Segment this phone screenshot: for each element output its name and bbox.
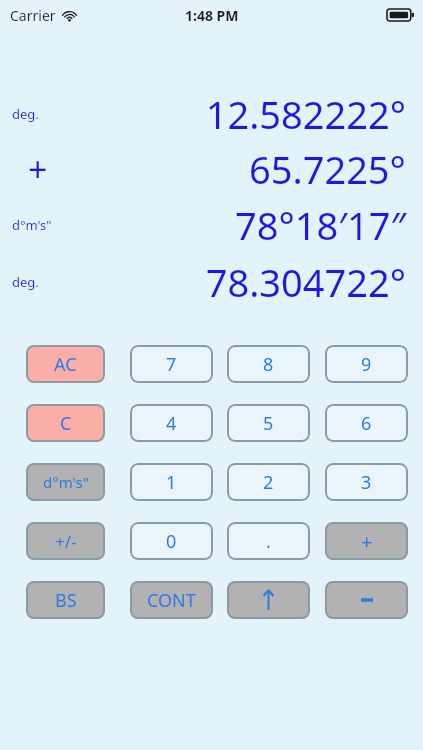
staticText: d°m's": [12, 216, 52, 234]
button[interactable]: CONT: [130, 581, 213, 619]
staticText: 78.304722°: [205, 256, 406, 308]
staticText: 5: [263, 411, 274, 436]
staticText: 65.7225°: [249, 143, 406, 195]
staticText: CONT: [147, 588, 196, 613]
button[interactable]: BS: [26, 581, 105, 619]
staticText: 1: [166, 470, 177, 495]
staticText: 1:48 PM: [185, 6, 239, 25]
staticText: 78°18′17″: [234, 199, 406, 251]
button[interactable]: AC: [26, 345, 105, 383]
button[interactable]: 0: [130, 522, 213, 560]
staticText: C: [60, 411, 72, 436]
staticText: +: [361, 528, 373, 555]
button[interactable]: 5: [227, 404, 310, 442]
button[interactable]: d°m's": [26, 463, 105, 501]
button[interactable]: Minus: [325, 581, 408, 619]
staticText: Carrier: [10, 6, 56, 25]
staticText: 2: [263, 470, 274, 495]
staticText: deg.: [12, 105, 39, 123]
button[interactable]: 7: [130, 345, 213, 383]
staticText: 8: [263, 352, 274, 377]
button[interactable]: 8: [227, 345, 310, 383]
button[interactable]: 3: [325, 463, 408, 501]
staticText: 0: [166, 529, 177, 554]
button[interactable]: .: [227, 522, 310, 560]
button[interactable]: 1: [130, 463, 213, 501]
button[interactable]: 2: [227, 463, 310, 501]
staticText: 3: [361, 470, 372, 495]
staticText: +: [28, 146, 48, 192]
button[interactable]: 4: [130, 404, 213, 442]
button[interactable]: 9: [325, 345, 408, 383]
staticText: 9: [361, 352, 372, 377]
staticText: .: [266, 529, 271, 554]
staticText: 4: [166, 411, 177, 436]
staticText: 6: [361, 411, 372, 436]
staticText: BS: [55, 588, 77, 613]
staticText: deg.: [12, 273, 39, 291]
button[interactable]: Up: [227, 581, 310, 619]
button[interactable]: +: [325, 522, 408, 560]
staticText: AC: [54, 352, 77, 377]
button[interactable]: +/-: [26, 522, 105, 560]
staticText: +/-: [55, 530, 77, 553]
button[interactable]: C: [26, 404, 105, 442]
staticText: d°m's": [43, 472, 89, 492]
staticText: 7: [166, 352, 177, 377]
button[interactable]: 6: [325, 404, 408, 442]
staticText: 12.582222°: [205, 88, 406, 140]
